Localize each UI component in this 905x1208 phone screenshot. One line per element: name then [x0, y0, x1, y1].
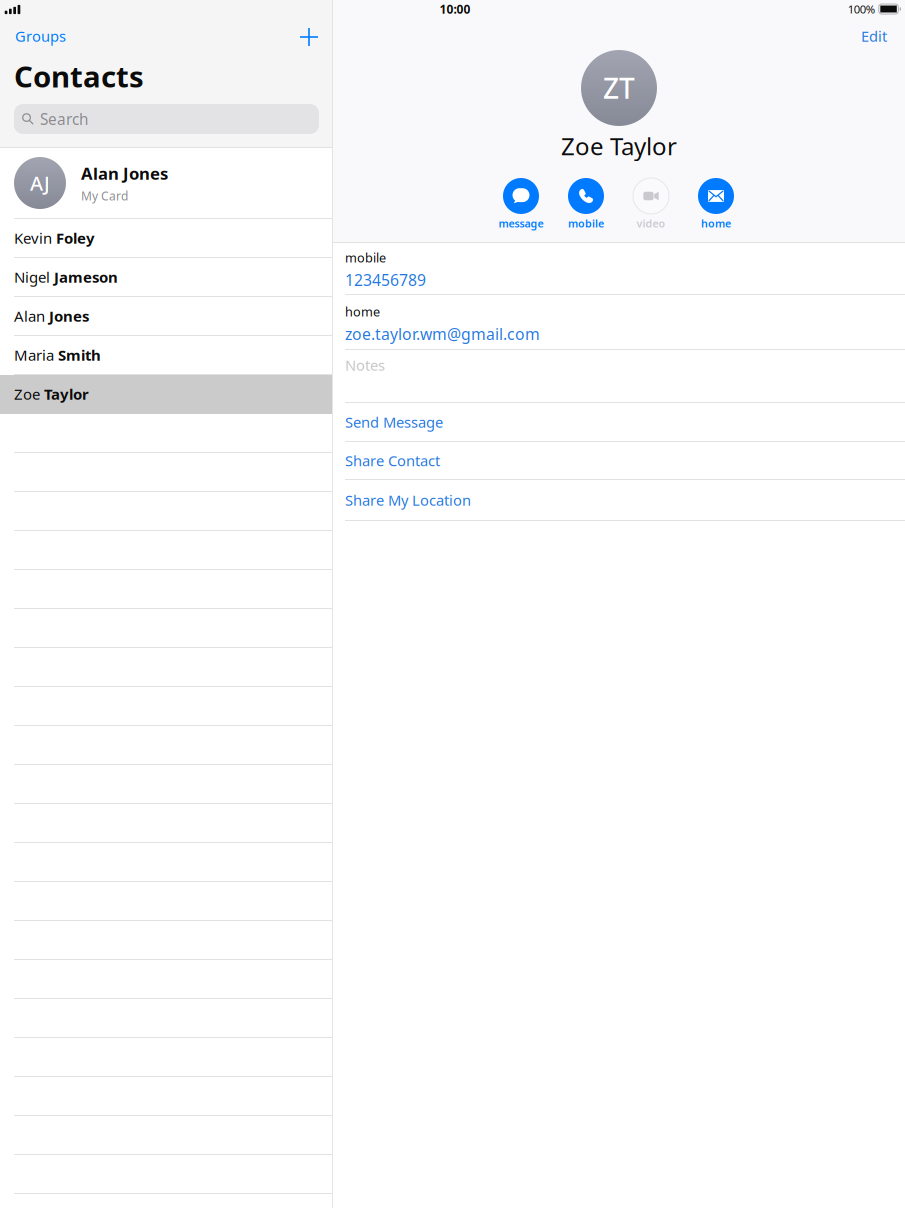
button[interactable]: Share Contact: [333, 442, 905, 480]
staticText: Zoe Taylor: [561, 130, 677, 162]
staticText: Alan Jones: [14, 306, 89, 326]
staticText: Share My Location: [345, 490, 471, 510]
staticText: Search: [40, 109, 88, 129]
staticText: Zoe Taylor: [14, 384, 89, 404]
staticText: My Card: [81, 188, 128, 204]
staticText: video: [636, 216, 665, 230]
button[interactable]: home: [333, 295, 905, 350]
staticText: Edit: [861, 26, 887, 46]
staticText: home: [345, 303, 380, 320]
button[interactable]: home: [683, 178, 748, 230]
button[interactable]: Send Message: [333, 403, 905, 442]
button[interactable]: Kevin Foley: [0, 219, 333, 258]
button[interactable]: video: [618, 178, 683, 230]
button[interactable]: Share My Location: [333, 480, 905, 521]
staticText: Contacts: [14, 56, 144, 96]
staticText: 100%: [848, 1, 875, 17]
staticText: home: [701, 216, 731, 230]
button[interactable]: Nigel Jameson: [0, 258, 333, 297]
staticText: message: [498, 216, 543, 230]
button[interactable]: mobile: [553, 178, 618, 230]
staticText: AJ: [30, 169, 50, 197]
button[interactable]: Alan Jones: [0, 297, 333, 336]
staticText: ZT: [603, 69, 635, 107]
button[interactable]: Maria Smith: [0, 336, 333, 375]
staticText: Kevin Foley: [14, 228, 95, 248]
staticText: Send Message: [345, 412, 443, 432]
staticText: mobile: [345, 249, 386, 266]
staticText: 123456789: [345, 269, 426, 291]
button[interactable]: Zoe Taylor: [0, 375, 333, 414]
staticText: Groups: [15, 26, 66, 46]
button[interactable]: Search: [14, 104, 319, 134]
staticText: Notes: [345, 355, 385, 375]
staticText: Alan Jones: [81, 162, 168, 185]
staticText: zoe.taylor.wm@gmail.com: [345, 323, 540, 345]
staticText: Nigel Jameson: [14, 267, 118, 287]
staticText: 10:00: [439, 1, 470, 17]
staticText: Maria Smith: [14, 345, 101, 365]
staticText: mobile: [568, 216, 604, 230]
button[interactable]: mobile: [333, 243, 905, 295]
button[interactable]: Groups: [15, 26, 75, 46]
button[interactable]: AJ: [0, 148, 333, 219]
button[interactable]: Add Contact: [295, 23, 323, 51]
button[interactable]: Edit: [847, 25, 887, 47]
staticText: Share Contact: [345, 450, 440, 470]
button[interactable]: message: [488, 178, 553, 230]
